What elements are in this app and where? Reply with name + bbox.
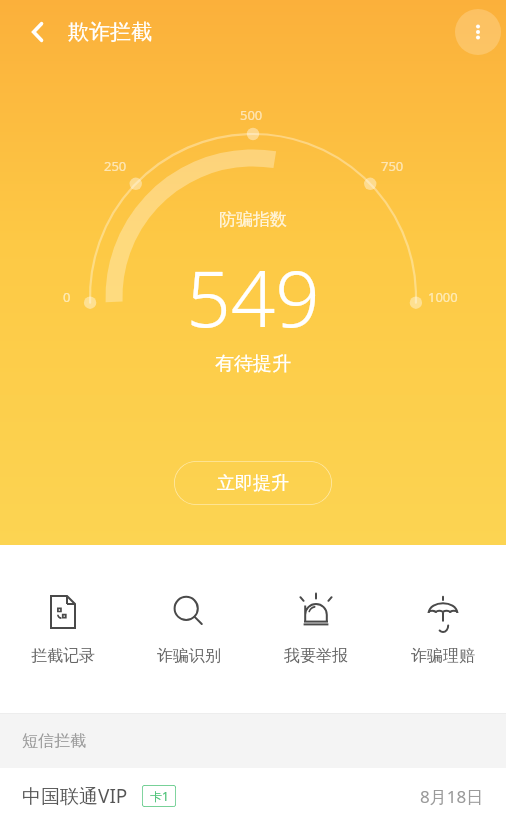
staticText: 拦截记录: [31, 646, 95, 666]
staticText: 卡1: [150, 788, 169, 804]
staticText: 500: [240, 106, 263, 124]
staticText: 立即提升: [217, 472, 289, 495]
staticText: 有待提升: [215, 352, 291, 376]
staticText: 我要举报: [284, 646, 348, 666]
staticText: 1000: [428, 288, 458, 306]
button[interactable]: 中国联通VIP: [0, 768, 506, 824]
button[interactable]: 诈骗理赔: [379, 545, 506, 713]
staticText: 诈骗理赔: [411, 646, 475, 666]
staticText: 中国联通VIP: [22, 783, 128, 809]
staticText: 短信拦截: [22, 731, 86, 751]
staticText: 防骗指数: [219, 209, 287, 230]
staticText: 750: [381, 157, 404, 175]
button[interactable]: 我要举报: [252, 545, 379, 713]
staticText: 8月18日: [420, 785, 484, 808]
staticText: 0: [63, 288, 71, 306]
staticText: 欺诈拦截: [68, 19, 152, 45]
button[interactable]: 立即提升: [174, 461, 332, 505]
button[interactable]: Back: [14, 8, 62, 56]
button[interactable]: 拦截记录: [0, 545, 126, 713]
staticText: 诈骗识别: [157, 646, 221, 666]
button[interactable]: More options: [455, 9, 501, 55]
button[interactable]: 诈骗识别: [126, 545, 252, 713]
staticText: 250: [104, 157, 127, 175]
staticText: 549: [186, 244, 320, 350]
